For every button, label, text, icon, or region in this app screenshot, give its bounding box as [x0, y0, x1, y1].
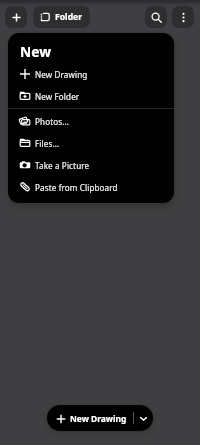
button[interactable]: Photos...: [8, 110, 174, 132]
button[interactable]: New Drawing: [47, 413, 133, 424]
staticText: New Folder: [35, 91, 80, 102]
staticText: Paste from Clipboard: [35, 182, 118, 193]
staticText: New Drawing: [70, 413, 127, 424]
button[interactable]: Files...: [8, 132, 174, 154]
button[interactable]: Add: [5, 6, 27, 28]
button[interactable]: More options: [172, 6, 194, 28]
button[interactable]: New Drawing: [8, 63, 174, 85]
button[interactable]: Search: [145, 6, 167, 28]
staticText: New: [20, 42, 51, 61]
staticText: Files...: [35, 138, 60, 149]
staticText: Take a Picture: [35, 160, 90, 171]
button[interactable]: Folder: [33, 6, 90, 28]
staticText: Folder: [55, 11, 83, 23]
button[interactable]: More drawing options: [134, 405, 153, 431]
button[interactable]: Take a Picture: [8, 154, 174, 176]
button[interactable]: Paste from Clipboard: [8, 176, 174, 198]
staticText: Photos...: [35, 116, 70, 127]
staticText: New Drawing: [35, 69, 88, 80]
button[interactable]: New Folder: [8, 85, 174, 107]
